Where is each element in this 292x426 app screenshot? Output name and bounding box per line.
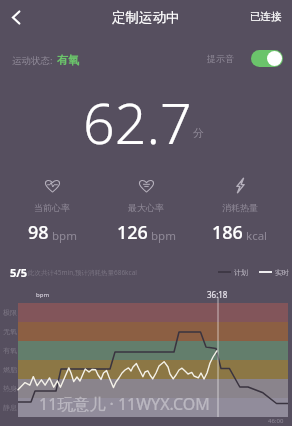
staticText: 分	[193, 126, 204, 140]
staticText: bpm	[36, 291, 49, 299]
button[interactable]: 已连接	[250, 10, 282, 23]
staticText: 无氧	[3, 327, 17, 336]
staticText: 已连接	[250, 10, 282, 23]
staticText: 11玩意儿 · 11WYX.COM	[39, 393, 210, 415]
staticText: 消耗热量	[222, 202, 258, 213]
button[interactable]: 消耗热量	[193, 178, 287, 245]
staticText: 极限	[3, 308, 17, 317]
staticText: kcal	[246, 228, 268, 244]
staticText: 当前心率	[34, 202, 70, 213]
staticText: 燃脂	[3, 365, 17, 374]
staticText: 最大心率	[128, 202, 164, 213]
button[interactable]: Sound toggle	[251, 50, 283, 67]
staticText: 126	[117, 220, 148, 245]
staticText: 有氧	[57, 53, 79, 67]
staticText: 36:18	[207, 289, 228, 300]
button[interactable]: Back	[2, 3, 30, 31]
staticText: 186	[212, 220, 243, 245]
staticText: 62.7	[83, 85, 192, 161]
button[interactable]: 最大心率	[99, 178, 193, 245]
staticText: 98	[28, 220, 49, 245]
staticText: bpm	[151, 228, 176, 244]
staticText: 实时	[275, 268, 289, 277]
staticText: 此次共计45min,预计消耗热量686kcal	[28, 268, 138, 277]
staticText: bpm	[52, 228, 77, 244]
staticText: 静息	[3, 403, 17, 412]
button[interactable]: 当前心率	[5, 178, 99, 245]
staticText: 运动状态:	[12, 54, 53, 67]
staticText: 计划	[234, 268, 248, 277]
staticText: 5/5	[10, 265, 28, 280]
staticText: 定制运动中	[112, 9, 180, 26]
staticText: 提示音	[207, 53, 234, 64]
staticText: 46:00	[268, 417, 284, 425]
staticText: 热身	[3, 384, 17, 393]
staticText: 有氧	[3, 346, 17, 355]
